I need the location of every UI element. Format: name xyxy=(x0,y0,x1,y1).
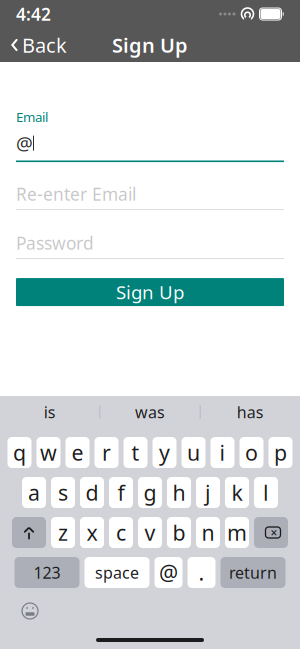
button[interactable]: Sign Up xyxy=(16,278,284,306)
staticText: z xyxy=(58,518,68,547)
staticText: w xyxy=(40,438,57,467)
staticText: . xyxy=(198,558,204,587)
button[interactable]: space xyxy=(84,557,149,588)
staticText: is xyxy=(44,401,56,423)
button[interactable]: e xyxy=(65,437,89,468)
staticText: return xyxy=(229,562,277,583)
button[interactable]: was xyxy=(100,396,200,428)
button[interactable]: n xyxy=(196,517,220,548)
button[interactable]: c xyxy=(109,517,133,548)
button[interactable]: a xyxy=(22,477,46,508)
staticText: was xyxy=(135,401,165,423)
button[interactable]: u xyxy=(181,437,205,468)
staticText: @ xyxy=(16,131,33,155)
button[interactable]: j xyxy=(196,477,220,508)
staticText: × xyxy=(270,524,277,540)
staticText: u xyxy=(187,438,200,467)
button[interactable]: Emoji xyxy=(15,596,45,626)
staticText: o xyxy=(245,438,258,467)
staticText: b xyxy=(172,518,185,547)
staticText: Email xyxy=(16,108,48,126)
button[interactable]: r xyxy=(94,437,118,468)
button[interactable]: p xyxy=(268,437,292,468)
staticText: h xyxy=(172,478,185,507)
staticText: 123 xyxy=(33,562,60,583)
staticText: d xyxy=(85,478,98,507)
staticText: k xyxy=(231,478,242,507)
button[interactable]: z xyxy=(51,517,75,548)
button[interactable]: is xyxy=(0,396,99,428)
button[interactable]: s xyxy=(51,477,75,508)
staticText: Sign Up xyxy=(116,280,184,304)
staticText: 4:42 xyxy=(16,2,51,25)
staticText: c xyxy=(116,518,126,547)
button[interactable]: Delete xyxy=(254,517,288,548)
staticText: t xyxy=(131,438,139,467)
button[interactable]: v xyxy=(138,517,162,548)
button[interactable]: k xyxy=(225,477,249,508)
button[interactable]: y xyxy=(152,437,176,468)
button[interactable]: l xyxy=(254,477,278,508)
button[interactable]: h xyxy=(167,477,191,508)
staticText: g xyxy=(143,478,156,507)
staticText: Sign Up xyxy=(112,32,188,58)
button[interactable]: . xyxy=(187,557,215,588)
button[interactable]: @ xyxy=(154,557,182,588)
button[interactable]: q xyxy=(7,437,31,468)
staticText: Back xyxy=(22,32,67,58)
staticText: space xyxy=(95,562,139,583)
staticText: s xyxy=(58,478,68,507)
staticText: y xyxy=(159,438,170,467)
staticText: @ xyxy=(159,558,178,587)
staticText: r xyxy=(102,438,111,467)
staticText: v xyxy=(144,518,155,547)
button[interactable]: o xyxy=(239,437,263,468)
staticText: i xyxy=(219,438,225,467)
button[interactable]: Back xyxy=(0,28,77,62)
button[interactable]: i xyxy=(210,437,234,468)
staticText: p xyxy=(274,438,287,467)
staticText: Password xyxy=(16,232,94,255)
button[interactable]: f xyxy=(109,477,133,508)
button[interactable]: Shift xyxy=(12,517,46,548)
button[interactable]: return xyxy=(220,557,285,588)
button[interactable]: g xyxy=(138,477,162,508)
staticText: q xyxy=(13,438,26,467)
staticText: l xyxy=(263,478,269,507)
staticText: has xyxy=(237,401,264,423)
button[interactable]: x xyxy=(80,517,104,548)
button[interactable]: d xyxy=(80,477,104,508)
button[interactable]: b xyxy=(167,517,191,548)
staticText: m xyxy=(227,518,247,547)
staticText: n xyxy=(201,518,214,547)
button[interactable]: 123 xyxy=(14,557,79,588)
staticText: x xyxy=(86,518,97,547)
staticText: f xyxy=(117,478,124,507)
staticText: e xyxy=(71,438,83,467)
button[interactable]: has xyxy=(201,396,300,428)
staticText: a xyxy=(28,478,40,507)
staticText: j xyxy=(205,478,211,507)
staticText: Re-enter Email xyxy=(16,183,136,206)
button[interactable]: w xyxy=(36,437,60,468)
button[interactable]: t xyxy=(123,437,147,468)
button[interactable]: m xyxy=(225,517,249,548)
